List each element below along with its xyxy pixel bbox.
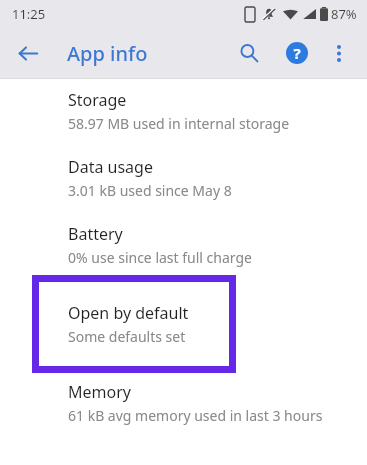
staticText: 61 kB avg memory used in last 3 hours	[68, 406, 323, 425]
button[interactable]: Back	[8, 33, 48, 73]
button[interactable]: More options	[319, 33, 359, 73]
button[interactable]: Memory	[0, 381, 367, 425]
staticText: Battery	[68, 223, 123, 245]
staticText: Data usage	[68, 156, 153, 178]
staticText: ?	[293, 43, 301, 63]
staticText: App info	[67, 40, 148, 67]
button[interactable]: Search	[229, 33, 269, 73]
button[interactable]: Battery	[0, 223, 367, 267]
staticText: 58.97 MB used in internal storage	[68, 114, 290, 133]
staticText: Memory	[68, 381, 131, 403]
staticText: 0% use since last full charge	[68, 248, 252, 267]
staticText: Some defaults set	[68, 327, 186, 346]
staticText: 87%	[331, 5, 357, 23]
staticText: Open by default	[68, 302, 189, 324]
button[interactable]: Open by default	[39, 282, 229, 366]
button[interactable]: Data usage	[0, 156, 367, 200]
button[interactable]: Storage	[0, 89, 367, 133]
staticText: 3.01 kB used since May 8	[68, 181, 232, 200]
button[interactable]: Help	[277, 33, 317, 73]
staticText: 11:25	[12, 5, 46, 23]
staticText: Storage	[68, 89, 127, 111]
